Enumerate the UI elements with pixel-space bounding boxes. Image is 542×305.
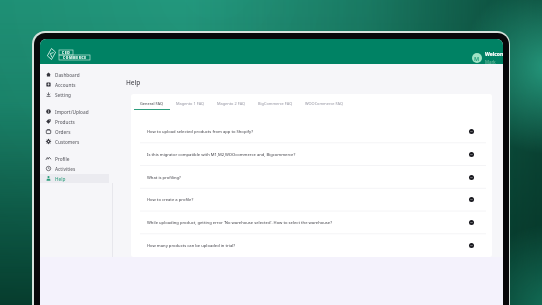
- staticText: CED: [62, 51, 71, 55]
- staticText: Magento 2 FAQ: [217, 101, 246, 106]
- staticText: Welcome: [485, 51, 503, 58]
- staticText: General FAQ: [140, 101, 164, 106]
- staticText: COMMERCE: [63, 56, 87, 60]
- staticText: Setting: [55, 92, 71, 98]
- button[interactable]: What is profiling?: [131, 166, 492, 189]
- staticText: Help: [126, 78, 141, 87]
- button[interactable]: Magento 2 FAQ: [211, 94, 252, 110]
- staticText: Help: [55, 176, 66, 182]
- staticText: Accounts: [55, 82, 76, 88]
- staticText: Mark: [485, 59, 496, 65]
- other: Expand: [469, 152, 474, 157]
- button[interactable]: How many products can be uploaded in tri…: [131, 234, 492, 257]
- button[interactable]: Magento 1 FAQ: [170, 94, 211, 110]
- button[interactable]: Customers: [40, 137, 109, 146]
- button[interactable]: Products: [40, 117, 109, 126]
- staticText: WOOCommerce FAQ: [305, 101, 343, 106]
- button[interactable]: CedCommerce home: [47, 48, 90, 60]
- other: Expand: [469, 220, 474, 225]
- staticText: Products: [55, 119, 75, 125]
- other: Expand: [469, 197, 474, 202]
- staticText: How to create a profile?: [147, 197, 469, 203]
- staticText: While uploading product, getting error '…: [147, 220, 469, 226]
- other: Expand: [469, 175, 474, 180]
- staticText: Magento 1 FAQ: [176, 101, 205, 106]
- staticText: Activities: [55, 166, 76, 172]
- button[interactable]: While uploading product, getting error '…: [131, 211, 492, 234]
- staticText: Profile: [55, 156, 70, 162]
- staticText: How many products can be uploaded in tri…: [147, 243, 469, 249]
- staticText: M: [474, 55, 480, 62]
- button[interactable]: Import/Upload: [40, 107, 109, 116]
- button[interactable]: Setting: [40, 90, 109, 99]
- button[interactable]: Is this migrator compatible with M1,M2,W…: [131, 143, 492, 166]
- button[interactable]: How to upload selected products from app…: [131, 120, 492, 143]
- button[interactable]: Help: [40, 174, 109, 183]
- button[interactable]: Profile: [40, 154, 109, 163]
- staticText: Is this migrator compatible with M1,M2,W…: [147, 152, 469, 158]
- button[interactable]: General FAQ: [134, 94, 170, 110]
- other: Expand: [469, 243, 474, 248]
- staticText: What is profiling?: [147, 175, 469, 181]
- button[interactable]: Accounts: [40, 80, 109, 89]
- staticText: Import/Upload: [55, 109, 89, 115]
- staticText: How to upload selected products from app…: [147, 129, 469, 135]
- button[interactable]: Dashboard: [40, 70, 109, 79]
- button[interactable]: BigCommerce FAQ: [252, 94, 299, 110]
- button[interactable]: WOOCommerce FAQ: [299, 94, 349, 110]
- button[interactable]: Activities: [40, 164, 109, 173]
- staticText: Orders: [55, 129, 71, 135]
- staticText: BigCommerce FAQ: [258, 101, 293, 106]
- button[interactable]: Account: [472, 51, 503, 65]
- button[interactable]: How to create a profile?: [131, 188, 492, 211]
- other: Expand: [469, 129, 474, 134]
- button[interactable]: Orders: [40, 127, 109, 136]
- staticText: Customers: [55, 139, 80, 145]
- staticText: Dashboard: [55, 72, 80, 78]
